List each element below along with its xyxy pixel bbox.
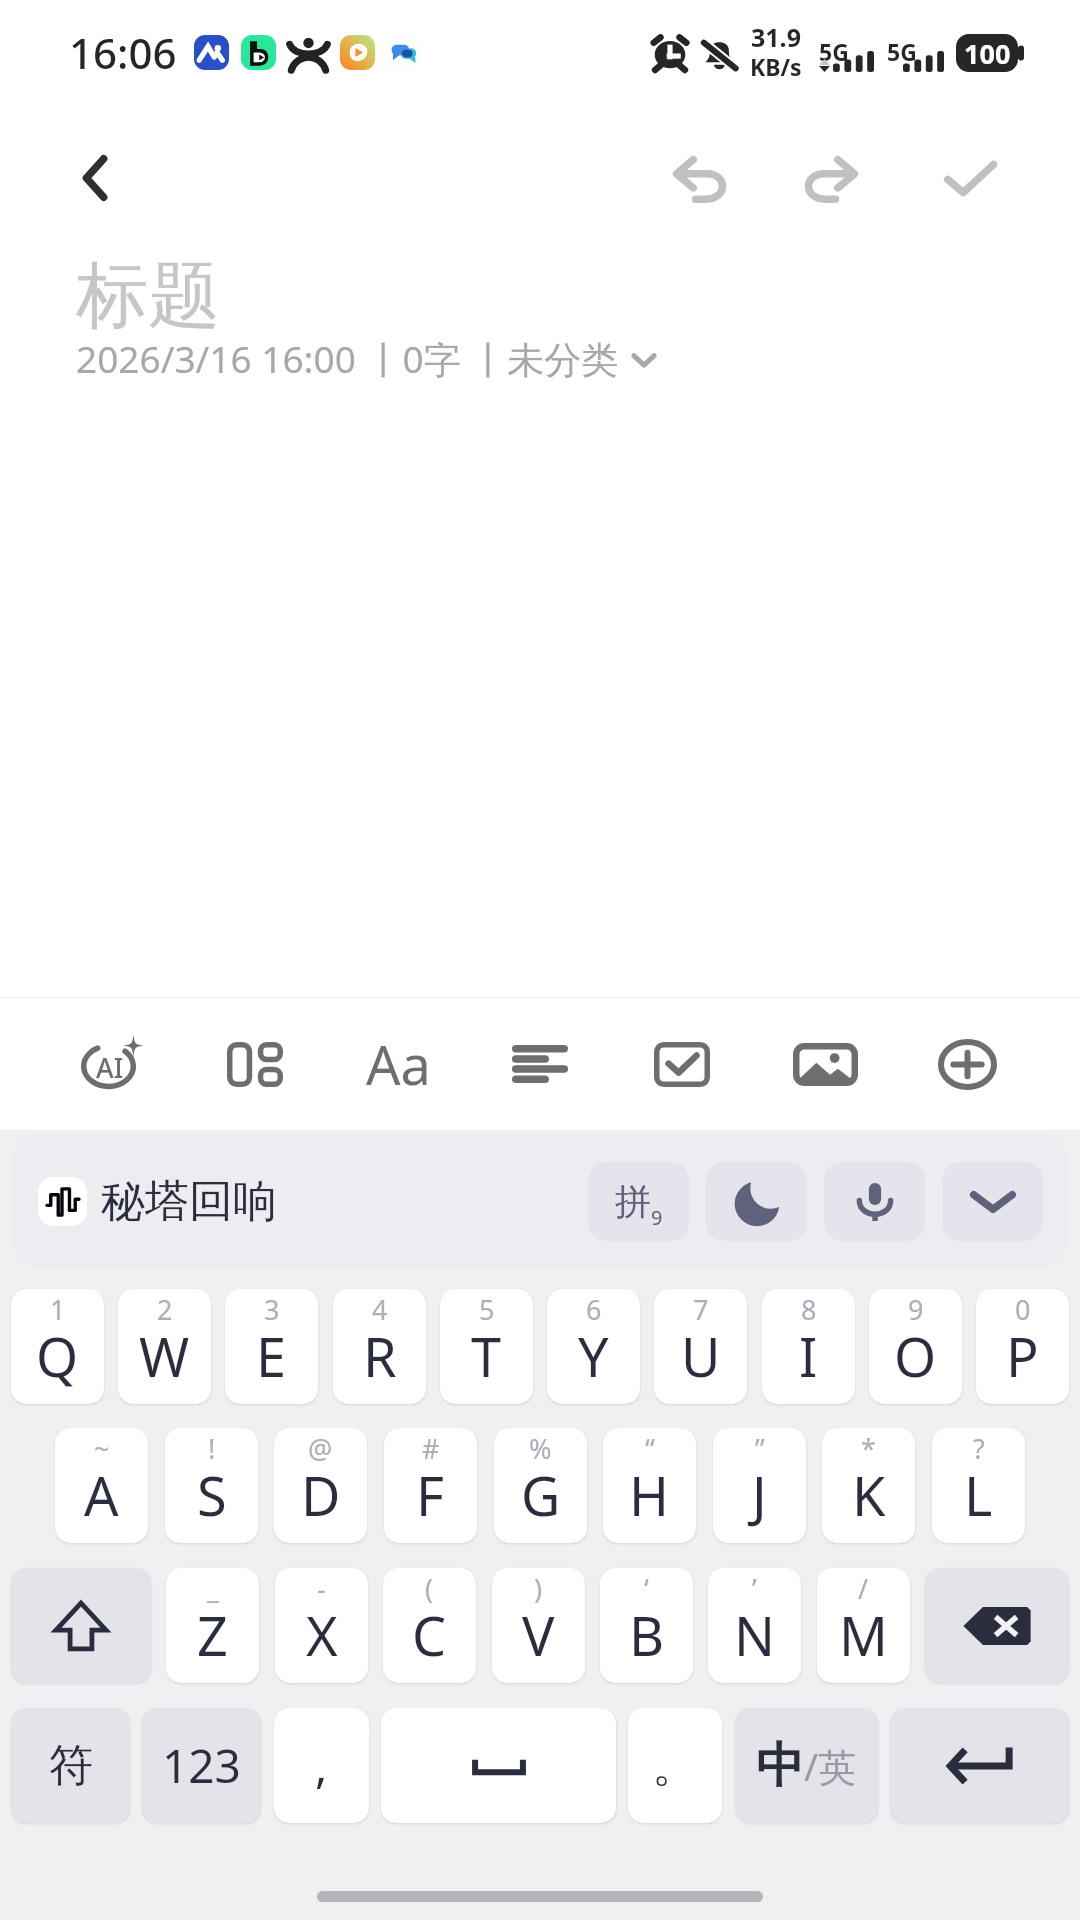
staticText: 符 [49,1738,93,1793]
button[interactable]: Back [56,138,136,218]
button[interactable]: R [333,1289,426,1404]
button[interactable]: I [762,1289,855,1404]
button[interactable]: 符 [11,1708,130,1823]
staticText: F [416,1458,445,1532]
button[interactable]: Q [11,1289,104,1404]
staticText: AI [96,1049,124,1086]
button[interactable]: Align [492,1016,588,1112]
button[interactable]: T [440,1289,533,1404]
staticText: 31.9 [751,20,801,54]
button[interactable]: K [822,1428,915,1543]
staticText: M [839,1598,888,1672]
staticText: 0 [1015,1291,1031,1328]
staticText: N [734,1598,776,1672]
button[interactable]: M [817,1568,910,1683]
staticText: 16:06 [69,24,177,81]
button[interactable]: F [384,1428,477,1543]
staticText: ) [534,1570,543,1607]
button[interactable]: G [494,1428,587,1543]
button[interactable]: Font size [350,1016,446,1112]
staticText: J [752,1458,767,1532]
staticText: B [629,1598,665,1672]
button[interactable]: Space [381,1708,616,1823]
button[interactable]: B [600,1568,693,1683]
staticText: 8 [801,1291,817,1328]
button[interactable]: V [492,1568,585,1683]
button[interactable]: 123 [142,1708,261,1823]
button[interactable]: Done [926,134,1014,222]
button[interactable]: A [55,1428,148,1543]
button[interactable]: U [654,1289,747,1404]
staticText: _ [207,1570,219,1607]
button[interactable]: J [713,1428,806,1543]
button[interactable]: Undo [656,134,744,222]
staticText: 9 [651,1204,663,1231]
staticText: 标题 [76,251,220,342]
staticText: @ [308,1430,333,1467]
staticText: Aa [366,1027,431,1101]
staticText: I [799,1319,818,1393]
button[interactable]: , [274,1708,369,1823]
button[interactable]: D [274,1428,367,1543]
button[interactable]: X [275,1568,368,1683]
staticText: /英 [804,1740,857,1792]
button[interactable]: L [932,1428,1025,1543]
button[interactable]: E [225,1289,318,1404]
staticText: ! [208,1430,216,1467]
button[interactable]: O [869,1289,962,1404]
staticText: % [529,1430,552,1467]
button[interactable]: S [165,1428,258,1543]
staticText: O [894,1319,937,1393]
staticText: ” [755,1430,765,1467]
button[interactable]: Y [547,1289,640,1404]
staticText: 拼 [615,1179,651,1224]
button[interactable]: N [708,1568,801,1683]
button[interactable]: Add [919,1016,1015,1112]
staticText: D [301,1458,341,1532]
button[interactable]: Enter [890,1708,1069,1823]
staticText: 秘塔回响 [101,1174,277,1229]
staticText: 2026/3/16 16:00 丨0字 丨未分类 [76,333,619,384]
button[interactable]: Backspace [925,1568,1069,1683]
button[interactable]: P [976,1289,1069,1404]
staticText: 中 [756,1736,804,1796]
button[interactable]: Checklist [634,1016,730,1112]
staticText: 。 [652,1737,698,1795]
staticText: 1 [50,1291,66,1328]
button[interactable]: Image [777,1016,873,1112]
staticText: Z [197,1598,228,1672]
staticText: 9 [908,1291,924,1328]
staticText: S [197,1458,227,1532]
button[interactable]: Chinese English toggle [735,1708,878,1823]
staticText: Q [36,1319,79,1393]
button[interactable]: C [383,1568,476,1683]
staticText: 2 [157,1291,173,1328]
button[interactable]: Pinyin layout [588,1162,689,1241]
staticText: 5G [887,36,917,67]
staticText: L [964,1458,993,1532]
staticText: V [522,1598,555,1672]
button[interactable]: H [603,1428,696,1543]
staticText: “ [645,1430,655,1467]
button[interactable]: Voice input [824,1162,925,1241]
staticText: R [363,1319,397,1393]
button[interactable]: Layout [207,1016,303,1112]
button[interactable]: Z [166,1568,259,1683]
staticText: 5 [479,1291,495,1328]
button[interactable]: Night mode [706,1162,807,1241]
staticText: P [1006,1319,1039,1393]
button[interactable]: 。 [628,1708,722,1823]
button[interactable]: Hide keyboard [942,1162,1043,1241]
staticText: 4 [372,1291,388,1328]
staticText: , [315,1734,328,1797]
staticText: G [521,1458,561,1532]
staticText: 100 [964,35,1011,72]
staticText: ( [425,1570,434,1607]
staticText: U [681,1319,721,1393]
button[interactable]: AI assistant [65,1016,161,1112]
staticText: E [256,1319,287,1393]
staticText: K [852,1458,886,1532]
button[interactable]: W [118,1289,211,1404]
button[interactable]: Redo [787,134,875,222]
button[interactable]: Shift [11,1568,151,1683]
